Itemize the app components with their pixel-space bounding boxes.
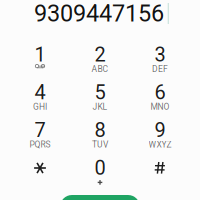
- staticText: DEF: [152, 64, 168, 74]
- staticText: WXYZ: [148, 140, 171, 150]
- button[interactable]: 2: [70, 45, 130, 82]
- staticText: 0: [94, 156, 105, 180]
- button[interactable]: 0: [70, 158, 130, 196]
- button[interactable]: Call: [60, 195, 140, 200]
- staticText: ABC: [91, 64, 108, 74]
- staticText: 3: [154, 43, 165, 66]
- staticText: 1: [34, 43, 45, 66]
- staticText: 8: [94, 118, 105, 142]
- button[interactable]: *: [10, 158, 70, 196]
- button[interactable]: 4: [10, 82, 70, 120]
- staticText: 9: [154, 118, 165, 142]
- button[interactable]: 3: [130, 45, 190, 82]
- staticText: 5: [94, 81, 105, 104]
- staticText: JKL: [92, 102, 107, 112]
- button[interactable]: 1: [10, 45, 70, 82]
- staticText: MNO: [150, 102, 169, 112]
- staticText: TUV: [92, 140, 108, 150]
- button[interactable]: #: [130, 158, 190, 196]
- staticText: PQRS: [29, 140, 50, 150]
- button[interactable]: 9: [130, 120, 190, 158]
- staticText: 9309447156: [34, 0, 164, 27]
- button[interactable]: 8: [70, 120, 130, 158]
- button[interactable]: 7: [10, 120, 70, 158]
- button[interactable]: 5: [70, 82, 130, 120]
- staticText: 4: [34, 81, 45, 104]
- staticText: 7: [34, 118, 45, 142]
- staticText: 2: [94, 43, 105, 66]
- staticText: GHI: [33, 102, 47, 112]
- button[interactable]: 6: [130, 82, 190, 120]
- staticText: 6: [154, 81, 165, 104]
